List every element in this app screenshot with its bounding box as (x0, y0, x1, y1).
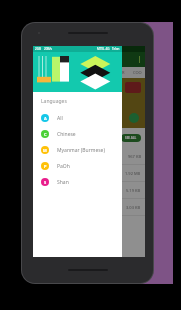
button[interactable]: 1.92 MB (33, 165, 145, 182)
staticText: 3.03 KB (126, 205, 141, 210)
staticText: Telen (112, 47, 120, 51)
staticText: 2GB (35, 47, 41, 51)
staticText: S (44, 180, 47, 185)
staticText: OR (119, 70, 125, 75)
button[interactable]: M (33, 142, 122, 158)
staticText: All (57, 115, 63, 122)
staticText: C (44, 132, 47, 137)
staticText: 1.92 MB (125, 171, 141, 176)
button[interactable]: P (33, 158, 122, 174)
staticText: Myanmar (Burmese) (57, 147, 105, 154)
button[interactable]: SEE ALL (121, 134, 141, 142)
staticText: 5.19 KB (126, 188, 141, 193)
staticText: 20B/s (44, 47, 52, 51)
button[interactable]: S (33, 174, 122, 190)
staticText: Languages (41, 98, 67, 105)
staticText: COO (133, 70, 142, 75)
button[interactable]: 967 KB (33, 148, 145, 165)
staticText: MTEL 4G (97, 47, 110, 51)
button[interactable]: 5.19 KB (33, 182, 145, 199)
staticText: A (44, 116, 47, 121)
staticText: M (43, 148, 47, 153)
staticText: PaOh (57, 163, 70, 170)
button[interactable]: 3.03 KB (33, 199, 145, 216)
staticText: Chinese (57, 131, 76, 138)
staticText: SEE ALL (125, 136, 137, 140)
staticText: 967 KB (128, 154, 141, 159)
staticText: Shan (57, 179, 69, 186)
button[interactable]: C (33, 126, 122, 142)
button[interactable]: A (33, 110, 122, 126)
staticText: P (44, 164, 47, 169)
